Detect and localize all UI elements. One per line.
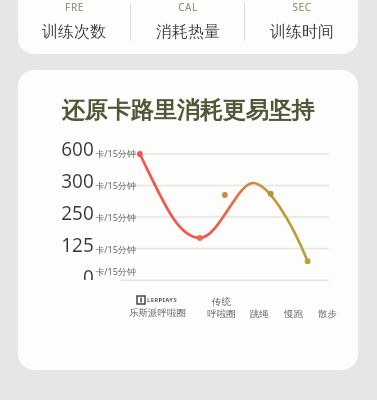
staticText: 还原卡路里消耗更易坚持 <box>18 96 358 125</box>
staticText: CAL <box>178 0 198 14</box>
button[interactable]: 慢跑 <box>276 308 310 320</box>
staticText: 训练次数 <box>42 22 106 42</box>
staticText: 乐斯派呼啦圈 <box>129 307 186 319</box>
other: Lerpiays brand logo <box>137 296 145 304</box>
staticText: 300 <box>61 168 94 194</box>
staticText: 125 <box>61 232 94 258</box>
staticText: 卡/15分钟 <box>95 265 136 277</box>
staticText: 散步 <box>318 308 337 320</box>
staticText: 传统 <box>212 296 231 308</box>
button[interactable]: 跳绳 <box>242 308 276 320</box>
staticText: FRE <box>65 0 84 14</box>
staticText: LERPIAYS <box>147 296 177 304</box>
button[interactable]: 传统 <box>200 296 242 320</box>
button[interactable]: 散步 <box>310 308 344 320</box>
button[interactable]: SEC <box>245 0 358 42</box>
staticText: 卡/15分钟 <box>95 243 136 255</box>
staticText: SEC <box>292 0 312 14</box>
staticText: 慢跑 <box>284 308 303 320</box>
staticText: 卡/15分钟 <box>95 211 136 223</box>
staticText: 0 <box>83 264 94 280</box>
staticText: 训练时间 <box>270 22 334 42</box>
staticText: 卡/15分钟 <box>95 179 136 191</box>
button[interactable]: Lerpiays brand logo <box>114 296 200 319</box>
staticText: 跳绳 <box>250 308 269 320</box>
staticText: 600 <box>61 136 94 162</box>
button[interactable]: FRE <box>18 0 130 42</box>
staticText: 呼啦圈 <box>207 308 236 320</box>
staticText: 250 <box>61 200 94 226</box>
staticText: 消耗热量 <box>156 22 220 42</box>
staticText: 卡/15分钟 <box>95 147 136 159</box>
button[interactable]: CAL <box>131 0 244 42</box>
